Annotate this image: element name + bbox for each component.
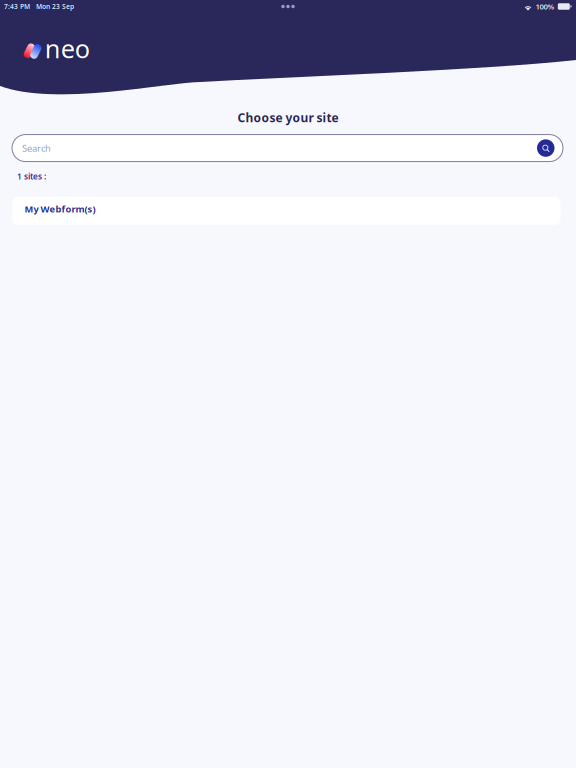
staticText: My Webform(s): [24, 203, 95, 215]
staticText: 7:43 PM: [4, 2, 30, 11]
button[interactable]: Search: [12, 135, 537, 162]
staticText: 1 sites :: [17, 171, 46, 182]
staticText: Choose your site: [237, 110, 338, 125]
button[interactable]: Search: [537, 139, 563, 157]
staticText: Search: [22, 142, 51, 154]
button[interactable]: My Webform(s): [12, 197, 560, 225]
staticText: 100%: [535, 1, 554, 12]
staticText: Mon 23 Sep: [30, 2, 74, 11]
staticText: neo: [45, 31, 90, 65]
